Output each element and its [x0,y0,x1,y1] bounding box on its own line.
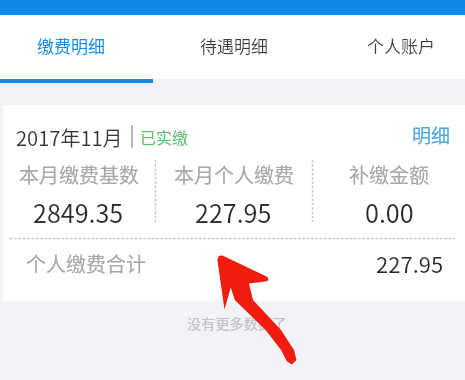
staticText: 缴费明细 [37,33,105,58]
staticText: 2849.35 [33,194,124,230]
button[interactable]: 缴费明细 [0,13,148,77]
button[interactable]: 明细 [407,121,455,147]
staticText: 227.95 [195,194,272,230]
staticText: 227.95 [376,247,444,279]
staticText: 0.00 [365,194,414,230]
staticText: 补缴金额 [349,160,429,189]
staticText: 个人账户 [367,33,435,58]
staticText: 已实缴 [140,125,189,148]
staticText: 没有更多数据了 [187,313,287,334]
staticText: 个人缴费合计 [26,249,146,278]
button[interactable]: 待遇明细 [156,13,311,77]
staticText: 2017年11月 [16,123,123,149]
staticText: 待遇明细 [200,33,268,58]
staticText: 明细 [412,121,451,147]
button[interactable]: 个人账户 [323,13,465,77]
staticText: 本月缴费基数 [19,160,139,189]
staticText: 本月个人缴费 [174,160,294,189]
